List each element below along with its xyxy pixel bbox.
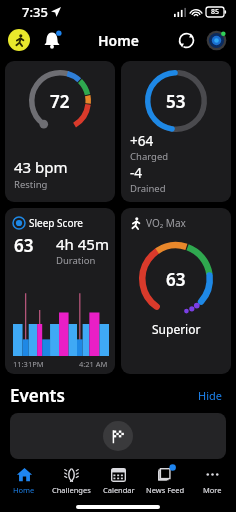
button[interactable]: Home (0, 459, 48, 501)
button[interactable]: Notifications (40, 28, 64, 52)
button[interactable]: My device (204, 28, 228, 52)
button[interactable]: Calendar (95, 459, 142, 501)
staticText: 7:35 (22, 3, 48, 21)
staticText: Superior (152, 321, 201, 337)
staticText: 63 (166, 268, 186, 291)
staticText: Calendar (103, 485, 135, 495)
button[interactable]: 72 (5, 61, 115, 202)
staticText: VO₂ Max (146, 216, 186, 230)
button[interactable]: More (189, 459, 236, 501)
staticText: 63 (14, 234, 34, 257)
staticText: Challenges (52, 485, 91, 495)
staticText: Hide (198, 388, 222, 403)
button[interactable]: Challenges (48, 459, 95, 501)
staticText: +64 (130, 132, 154, 150)
button[interactable]: VO₂ Max (121, 208, 231, 374)
button[interactable] (10, 413, 226, 459)
staticText: 4h 45m (56, 234, 109, 254)
staticText: Sleep Score (29, 216, 84, 230)
staticText: 4:21 AM (79, 359, 108, 369)
staticText: More (203, 485, 222, 495)
button[interactable]: Activity profile (8, 29, 30, 51)
staticText: Events (10, 384, 65, 407)
staticText: Drained (130, 182, 166, 195)
staticText: Duration (56, 254, 96, 267)
staticText: Home (98, 31, 139, 50)
button[interactable]: Hide (194, 384, 226, 407)
staticText: 85 (211, 7, 220, 17)
staticText: Home (13, 485, 35, 495)
button[interactable]: Sleep Score (5, 208, 115, 374)
staticText: 53 (166, 90, 186, 113)
button[interactable]: 53 (121, 61, 231, 202)
staticText: -4 (130, 164, 143, 182)
button[interactable]: Sync (174, 28, 198, 52)
button[interactable]: News Feed (142, 459, 189, 501)
staticText: 72 (50, 90, 70, 113)
staticText: News Feed (146, 485, 185, 495)
staticText: Charged (130, 150, 169, 163)
staticText: Resting (14, 178, 48, 191)
staticText: 11:31PM (13, 359, 44, 369)
staticText: 43 bpm (14, 157, 68, 177)
